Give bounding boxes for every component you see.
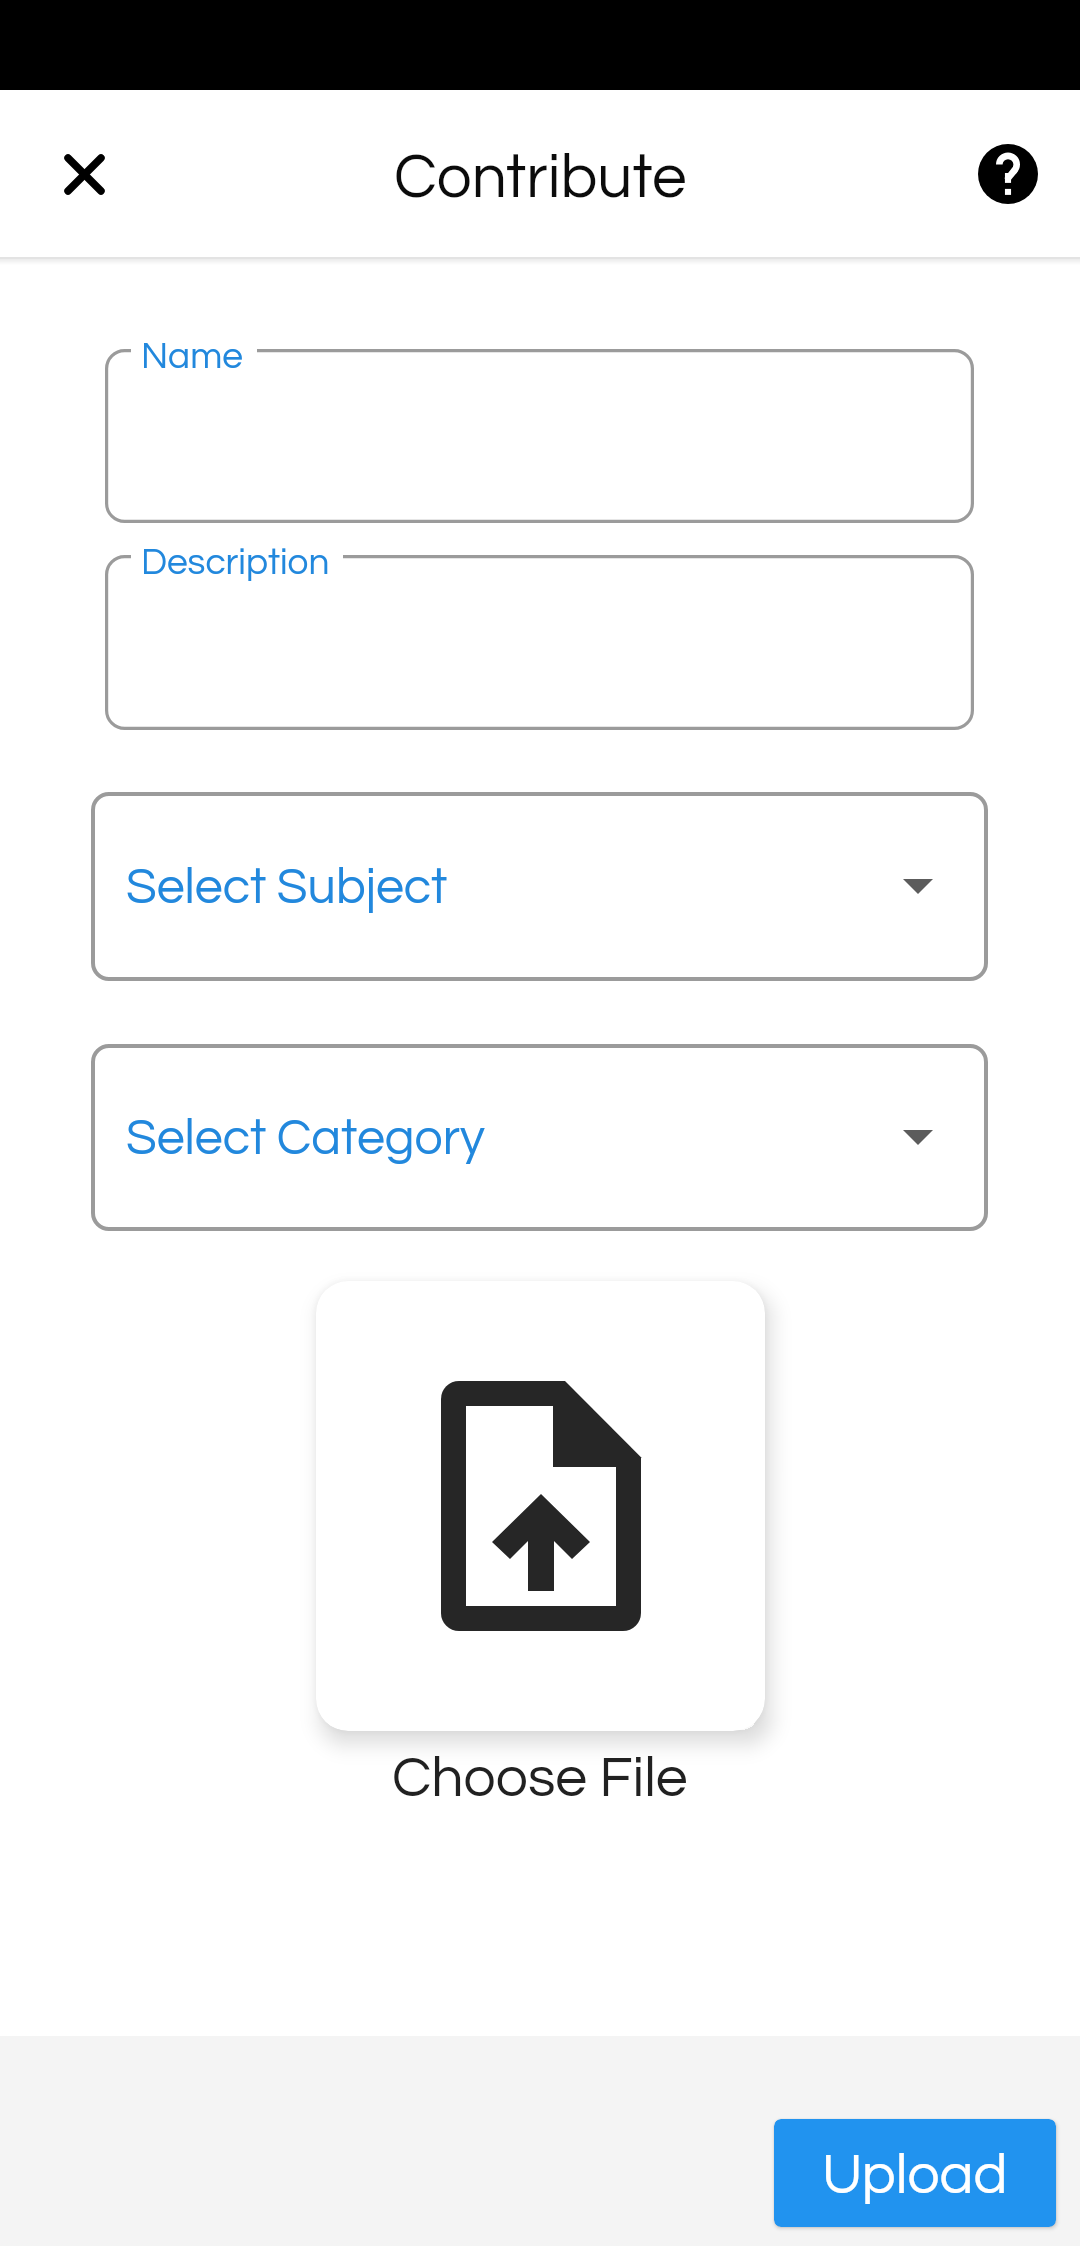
staticText: Upload xyxy=(822,2146,1008,2205)
button[interactable]: Description xyxy=(105,555,974,730)
button[interactable]: Select Category xyxy=(91,1044,988,1231)
staticText: Contribute xyxy=(394,146,687,210)
button[interactable]: Select Subject xyxy=(91,792,988,981)
staticText: Select Subject xyxy=(126,862,448,914)
button[interactable]: Help xyxy=(960,126,1056,222)
button[interactable]: Name xyxy=(105,349,974,523)
button[interactable]: Upload xyxy=(774,2119,1056,2227)
button[interactable]: Close xyxy=(36,126,132,222)
staticText: Select Category xyxy=(126,1113,485,1165)
button[interactable]: Choose File xyxy=(316,1281,765,1731)
staticText: Description xyxy=(141,544,330,582)
button[interactable]: Choose File xyxy=(316,1740,765,1812)
staticText: Name xyxy=(141,338,243,376)
staticText: Choose File xyxy=(392,1749,688,1808)
